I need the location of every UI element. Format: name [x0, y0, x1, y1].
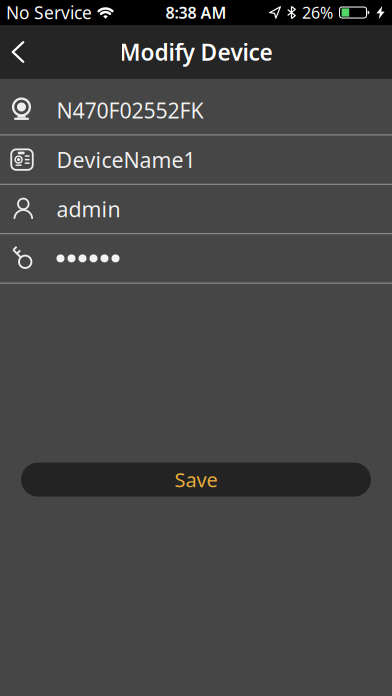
button[interactable]: Save — [21, 463, 371, 497]
staticText: DeviceName1 — [56, 145, 195, 174]
button[interactable]: admin — [0, 185, 392, 234]
staticText: No Service — [6, 1, 92, 24]
button[interactable]: Back — [0, 25, 41, 79]
staticText: 8:38 AM — [165, 2, 226, 23]
staticText: 26% — [302, 2, 333, 23]
button[interactable]: DeviceName1 — [0, 135, 392, 185]
staticText: Modify Device — [119, 37, 272, 67]
staticText: N470F02552FK — [56, 96, 203, 124]
staticText: admin — [56, 195, 120, 223]
button[interactable]: N470F02552FK — [0, 86, 392, 135]
button[interactable] — [0, 234, 392, 284]
staticText: Save — [174, 466, 217, 493]
